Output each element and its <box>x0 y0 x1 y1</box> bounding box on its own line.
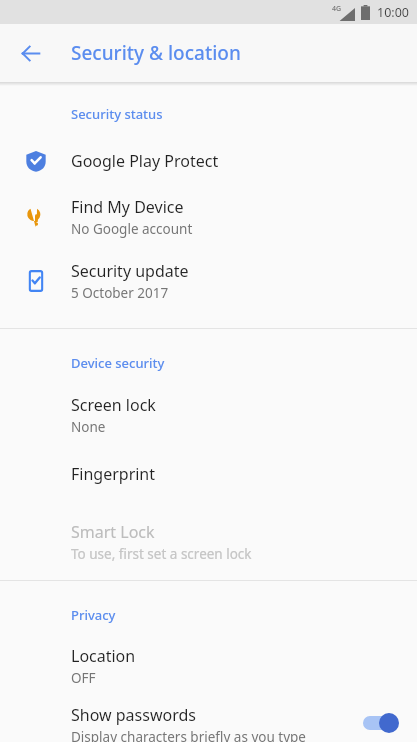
button[interactable]: Google Play Protect <box>0 137 417 185</box>
button[interactable]: Find My Device <box>0 185 417 249</box>
button[interactable]: Back <box>8 31 52 75</box>
staticText: Screen lock <box>71 394 156 416</box>
staticText: None <box>71 418 106 436</box>
button[interactable]: Screen lock <box>0 386 417 444</box>
staticText: Fingerprint <box>71 463 156 485</box>
button[interactable]: Fingerprint <box>0 452 417 496</box>
staticText: Smart Lock <box>71 521 155 543</box>
button[interactable]: Show passwords toggle <box>361 710 401 736</box>
staticText: Security update <box>71 260 189 282</box>
button[interactable]: Smart Lock <box>0 514 417 570</box>
staticText: No Google account <box>71 220 193 238</box>
button[interactable]: Location <box>0 638 417 694</box>
staticText: Privacy <box>71 606 116 624</box>
staticText: 10:00 <box>377 4 409 21</box>
staticText: Find My Device <box>71 196 184 218</box>
staticText: Security & location <box>71 40 241 66</box>
staticText: OFF <box>71 669 96 687</box>
staticText: Show passwords <box>71 704 196 726</box>
staticText: Device security <box>71 354 165 372</box>
staticText: 5 October 2017 <box>71 284 169 302</box>
staticText: Security status <box>71 105 163 123</box>
staticText: Google Play Protect <box>71 150 219 172</box>
button[interactable]: Security update <box>0 249 417 313</box>
staticText: To use, first set a screen lock <box>71 545 252 563</box>
staticText: Location <box>71 645 136 667</box>
button[interactable]: Show passwords <box>0 704 417 742</box>
staticText: 4G <box>332 4 342 14</box>
staticText: Display characters briefly as you type <box>71 728 306 742</box>
